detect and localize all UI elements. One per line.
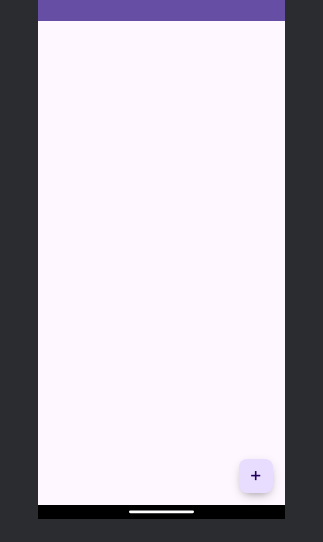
- button[interactable]: Home: [129, 510, 194, 513]
- button[interactable]: Add: [239, 459, 273, 493]
